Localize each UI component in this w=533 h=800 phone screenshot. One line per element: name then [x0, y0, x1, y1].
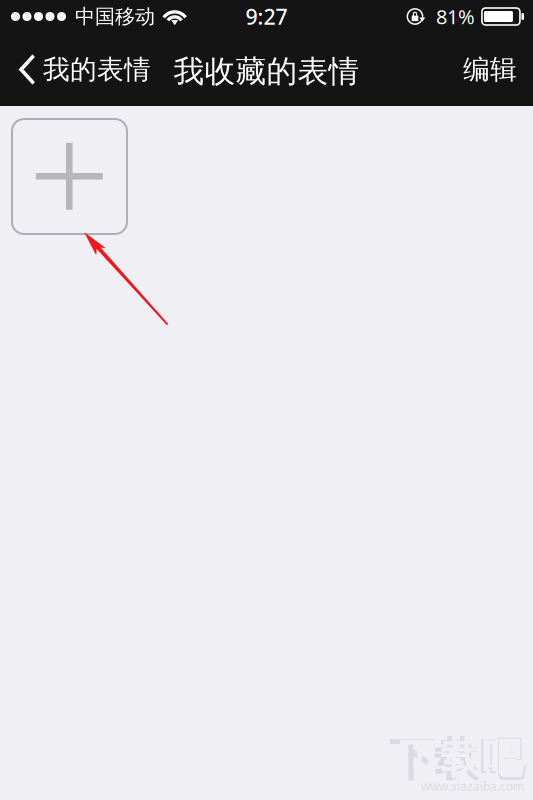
staticText: 中国移动: [75, 4, 155, 29]
button[interactable]: Add sticker: [12, 119, 127, 234]
button[interactable]: 我的表情: [0, 33, 163, 106]
staticText: 下载吧: [389, 732, 524, 788]
staticText: 编辑: [463, 53, 517, 86]
staticText: 我收藏的表情: [173, 53, 359, 90]
staticText: 81%: [436, 3, 475, 30]
staticText: 我的表情: [43, 53, 151, 86]
button[interactable]: 编辑: [449, 33, 533, 106]
staticText: 9:27: [245, 2, 287, 31]
staticText: www.xiazaiba.com: [421, 778, 524, 794]
